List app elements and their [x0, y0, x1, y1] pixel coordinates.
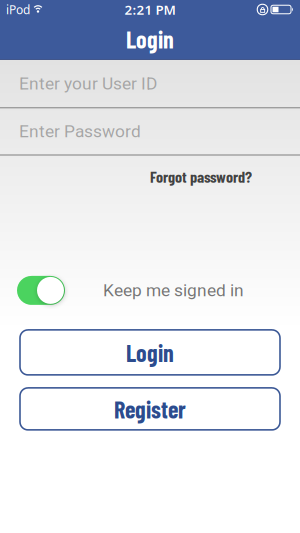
- staticText: iPod: [6, 1, 30, 17]
- staticText: Keep me signed in: [103, 280, 244, 300]
- staticText: Enter Password: [19, 121, 141, 141]
- staticText: Login: [126, 338, 174, 367]
- staticText: Login: [126, 25, 174, 53]
- staticText: 2:21 PM: [124, 1, 175, 18]
- staticText: Register: [114, 394, 186, 423]
- staticText: Enter your User ID: [19, 73, 157, 94]
- staticText: Forgot password?: [150, 167, 252, 186]
